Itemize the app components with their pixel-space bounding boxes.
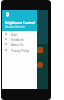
- staticText: About Us: [11, 43, 24, 47]
- staticText: Brightness Control: [5, 21, 35, 25]
- staticText: Start: [11, 33, 18, 37]
- button[interactable]: Add: [37, 62, 43, 68]
- button[interactable]: Brightness Control: [2, 10, 37, 31]
- button[interactable]: About Us: [2, 42, 37, 47]
- button[interactable]: Start: [2, 32, 37, 37]
- button[interactable]: Feedback: [2, 37, 37, 42]
- staticText: Feedback: [11, 38, 24, 42]
- staticText: Nicolas Mercier: [5, 25, 26, 29]
- button[interactable]: Privacy Policy: [2, 48, 37, 53]
- staticText: Privacy Policy: [11, 49, 30, 53]
